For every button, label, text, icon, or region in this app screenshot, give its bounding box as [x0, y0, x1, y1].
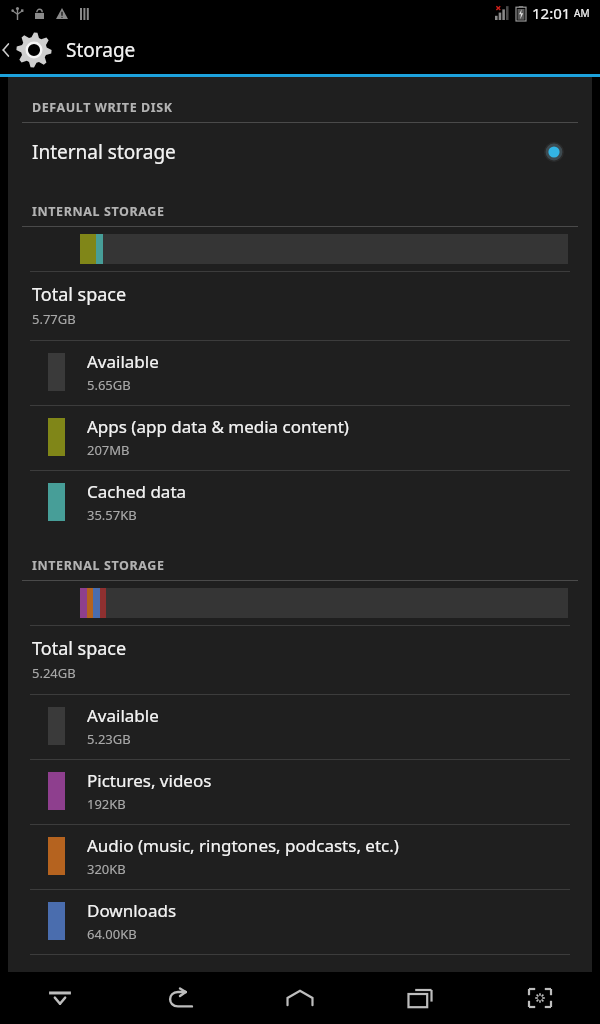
staticText: 5.24GB [32, 664, 76, 682]
staticText: 12:01 [532, 3, 571, 23]
button[interactable]: Navigate up [0, 26, 600, 74]
button[interactable]: Available [8, 341, 592, 405]
staticText: DEFAULT WRITE DISK [32, 99, 173, 116]
staticText: 192KB [87, 795, 126, 813]
button[interactable]: Home [269, 972, 331, 1024]
staticText: Total space [32, 636, 127, 661]
staticText: 64.00KB [87, 925, 137, 943]
button[interactable]: Apps (app data & media content) [8, 406, 592, 470]
button[interactable]: Internal storage [8, 123, 592, 181]
button[interactable]: Available [8, 695, 592, 759]
staticText: AM [574, 6, 590, 20]
button[interactable]: Total space [8, 272, 592, 340]
staticText: Audio (music, ringtones, podcasts, etc.) [87, 834, 399, 857]
button[interactable]: Back [149, 972, 211, 1024]
button[interactable]: Pictures, videos [8, 760, 592, 824]
button[interactable]: Downloads [8, 890, 592, 954]
staticText: Apps (app data & media content) [87, 415, 349, 438]
staticText: Internal storage [32, 139, 544, 165]
staticText: 5.65GB [87, 376, 131, 394]
staticText: Pictures, videos [87, 769, 212, 792]
button[interactable]: Screenshot [509, 972, 571, 1024]
button[interactable]: Hide navigation [29, 972, 91, 1024]
staticText: 5.23GB [87, 730, 131, 748]
button[interactable]: Cached data [8, 471, 592, 535]
staticText: Available [87, 704, 159, 727]
staticText: INTERNAL STORAGE [32, 557, 165, 574]
button[interactable]: Total space [8, 626, 592, 694]
staticText: Cached data [87, 480, 187, 503]
staticText: INTERNAL STORAGE [32, 203, 165, 220]
staticText: Available [87, 350, 159, 373]
staticText: Total space [32, 282, 127, 307]
staticText: Downloads [87, 899, 177, 922]
staticText: 35.57KB [87, 506, 137, 524]
staticText: Storage [66, 37, 136, 63]
staticText: 320KB [87, 860, 126, 878]
staticText: 5.77GB [32, 310, 76, 328]
button[interactable]: Audio (music, ringtones, podcasts, etc.) [8, 825, 592, 889]
button[interactable]: Recent apps [389, 972, 451, 1024]
staticText: 207MB [87, 441, 130, 459]
